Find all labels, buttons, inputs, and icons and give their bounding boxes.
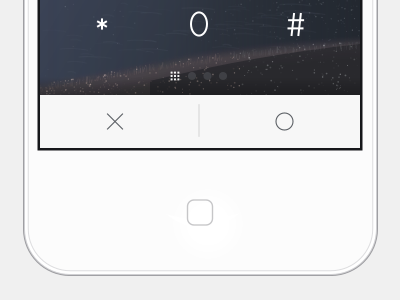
button[interactable]: Star <box>60 4 144 44</box>
button[interactable]: Close <box>36 95 194 148</box>
button[interactable]: Capture <box>205 95 364 148</box>
button[interactable]: Zero <box>157 4 241 44</box>
button[interactable]: Pound <box>254 4 338 44</box>
